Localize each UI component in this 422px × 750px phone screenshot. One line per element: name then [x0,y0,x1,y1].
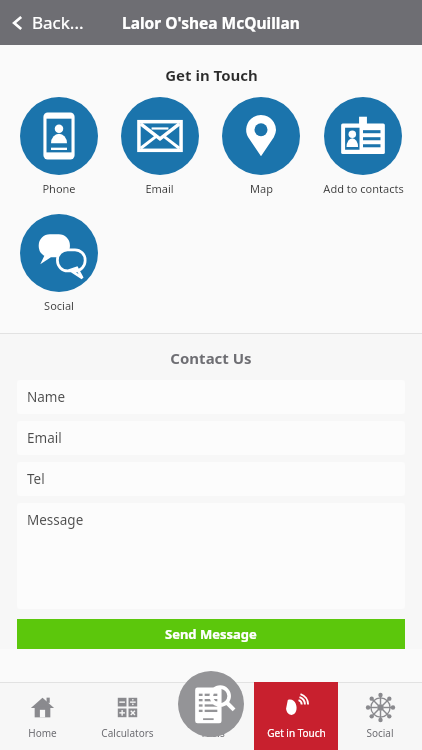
staticText: Tel [27,470,45,488]
staticText: Calculators [101,726,154,740]
button[interactable]: Send Message [17,619,405,649]
button[interactable]: Back... [0,5,94,40]
staticText: Get in Touch [165,65,258,85]
button[interactable]: Phone [8,95,109,198]
button[interactable]: Email [17,421,405,455]
button[interactable]: Get in Touch [254,682,338,750]
staticText: Get in Touch [267,726,326,740]
staticText: Social [366,726,394,740]
button[interactable]: Calculators [85,682,170,750]
staticText: Lalor O'shea McQuillan [122,12,300,33]
staticText: Home [28,726,57,740]
staticText: Map [250,181,273,196]
button[interactable]: Tools [170,682,254,750]
button[interactable]: Add to contacts [312,95,414,198]
staticText: Back... [32,11,84,34]
button[interactable]: Tel [17,462,405,496]
button[interactable]: Name [17,380,405,414]
button[interactable]: Tools [178,671,244,737]
button[interactable]: Social [8,212,109,315]
button[interactable]: Message [17,503,405,609]
staticText: Contact Us [170,348,252,368]
staticText: Add to contacts [323,181,404,196]
staticText: Email [145,181,174,196]
button[interactable]: Home [0,682,85,750]
staticText: Name [27,388,66,406]
staticText: Tools [200,726,225,740]
staticText: Social [44,298,74,313]
staticText: Phone [42,181,76,196]
button[interactable]: Social [338,682,422,750]
staticText: Message [27,511,84,529]
button[interactable]: Map [210,95,312,198]
staticText: Send Message [165,625,257,643]
button[interactable]: Email [109,95,210,198]
staticText: Email [27,429,62,447]
